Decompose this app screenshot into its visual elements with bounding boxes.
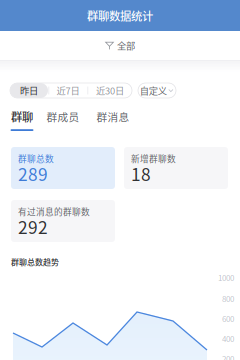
staticText: 近7日: [56, 84, 79, 97]
button[interactable]: 群消息: [96, 110, 130, 123]
staticText: 200: [222, 353, 234, 360]
staticText: 自定义: [140, 84, 167, 97]
staticText: 群聊总数: [18, 152, 54, 165]
button[interactable]: 近7日: [49, 83, 87, 98]
button[interactable]: 有过消息的群聊数: [11, 200, 115, 242]
staticText: 群聊总数趋势: [11, 256, 59, 268]
button[interactable]: 近30日: [88, 83, 132, 98]
staticText: 群聊数据统计: [87, 7, 153, 24]
staticText: 289: [18, 161, 48, 186]
button[interactable]: 群聊总数: [11, 147, 115, 189]
staticText: 800: [222, 293, 234, 304]
button[interactable]: 新增群聊数: [124, 147, 228, 189]
button[interactable]: 昨日: [10, 83, 48, 98]
staticText: 全部: [117, 39, 135, 52]
button[interactable]: 全部: [0, 31, 240, 60]
staticText: 近30日: [96, 84, 124, 97]
staticText: 600: [222, 313, 234, 324]
staticText: 新增群聊数: [131, 152, 176, 165]
staticText: 1000: [218, 272, 234, 283]
button[interactable]: 自定义: [138, 83, 176, 98]
staticText: 群聊: [11, 108, 33, 125]
staticText: 群成员: [46, 109, 79, 124]
button[interactable]: 群成员: [46, 110, 80, 123]
staticText: 昨日: [20, 84, 38, 97]
staticText: 18: [131, 161, 151, 186]
staticText: 群消息: [96, 109, 129, 124]
staticText: 400: [222, 333, 234, 344]
staticText: 292: [18, 214, 48, 239]
button[interactable]: 群聊: [10, 110, 34, 131]
staticText: 有过消息的群聊数: [18, 205, 90, 218]
